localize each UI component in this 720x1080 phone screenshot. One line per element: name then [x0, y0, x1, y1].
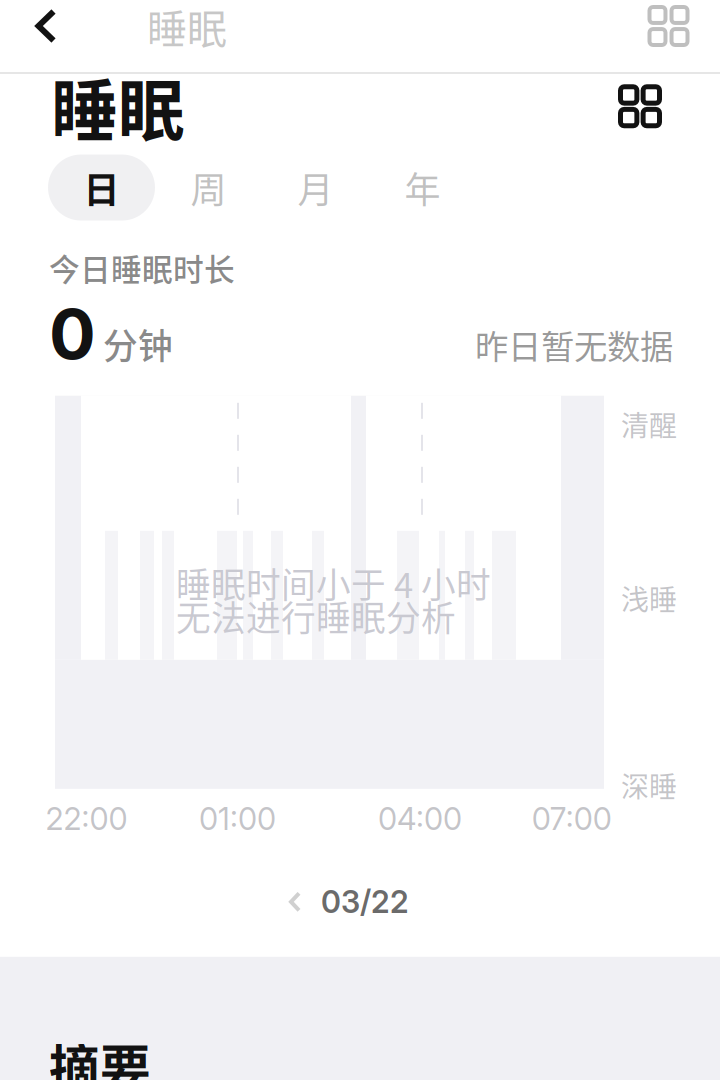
button[interactable]: 周: [155, 154, 262, 220]
staticText: 睡眠: [147, 0, 227, 55]
staticText: 03/22: [321, 883, 409, 920]
staticText: 今日睡眠时长: [49, 245, 235, 290]
staticText: 清醒: [621, 404, 677, 444]
button[interactable]: 年: [369, 154, 476, 220]
button[interactable]: 日: [48, 154, 155, 220]
staticText: 22:00: [46, 800, 128, 837]
staticText: 日: [83, 161, 119, 214]
staticText: 深睡: [621, 765, 677, 805]
staticText: 浅睡: [621, 578, 677, 618]
staticText: 摘要: [49, 1029, 151, 1080]
staticText: 07:00: [532, 800, 612, 837]
staticText: 昨日暂无数据: [475, 320, 673, 369]
staticText: 睡眠: [51, 58, 185, 154]
staticText: 月: [297, 161, 333, 214]
button[interactable]: Back: [0, 0, 92, 52]
staticText: 睡眠时间小于 4 小时: [176, 558, 491, 608]
staticText: 年: [404, 161, 440, 214]
button[interactable]: Grid layout: [612, 78, 668, 134]
staticText: 无法进行睡眠分析: [176, 591, 456, 641]
button[interactable]: 月: [262, 154, 369, 220]
staticText: 分钟: [103, 319, 173, 369]
button[interactable]: Previous day: [272, 879, 318, 925]
staticText: 01:00: [199, 800, 276, 837]
button[interactable]: Switch view: [617, 0, 720, 52]
staticText: 0: [49, 292, 96, 376]
staticText: 04:00: [378, 800, 462, 837]
staticText: 周: [190, 161, 226, 214]
